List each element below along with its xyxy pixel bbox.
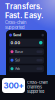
staticText: Arb xyxy=(15,67,20,71)
staticText: supported xyxy=(5,25,25,30)
staticText: channels xyxy=(27,85,42,89)
staticText: Send xyxy=(13,33,21,37)
button[interactable]: Sol xyxy=(9,57,44,64)
staticText: Base xyxy=(15,50,23,54)
staticText: Fast. Easy. xyxy=(5,11,43,20)
button[interactable]: Arb xyxy=(9,65,44,72)
button[interactable]: Base xyxy=(9,48,44,55)
staticText: Sol xyxy=(15,58,20,62)
staticText: 0.00 xyxy=(10,40,20,45)
button[interactable]: 300+ xyxy=(2,78,25,93)
staticText: 300+ xyxy=(3,81,23,90)
staticText: Cross-chain xyxy=(5,20,26,25)
staticText: Transfers. xyxy=(5,2,42,11)
staticText: Cross-chain xyxy=(27,80,48,85)
staticText: supported xyxy=(27,89,44,94)
